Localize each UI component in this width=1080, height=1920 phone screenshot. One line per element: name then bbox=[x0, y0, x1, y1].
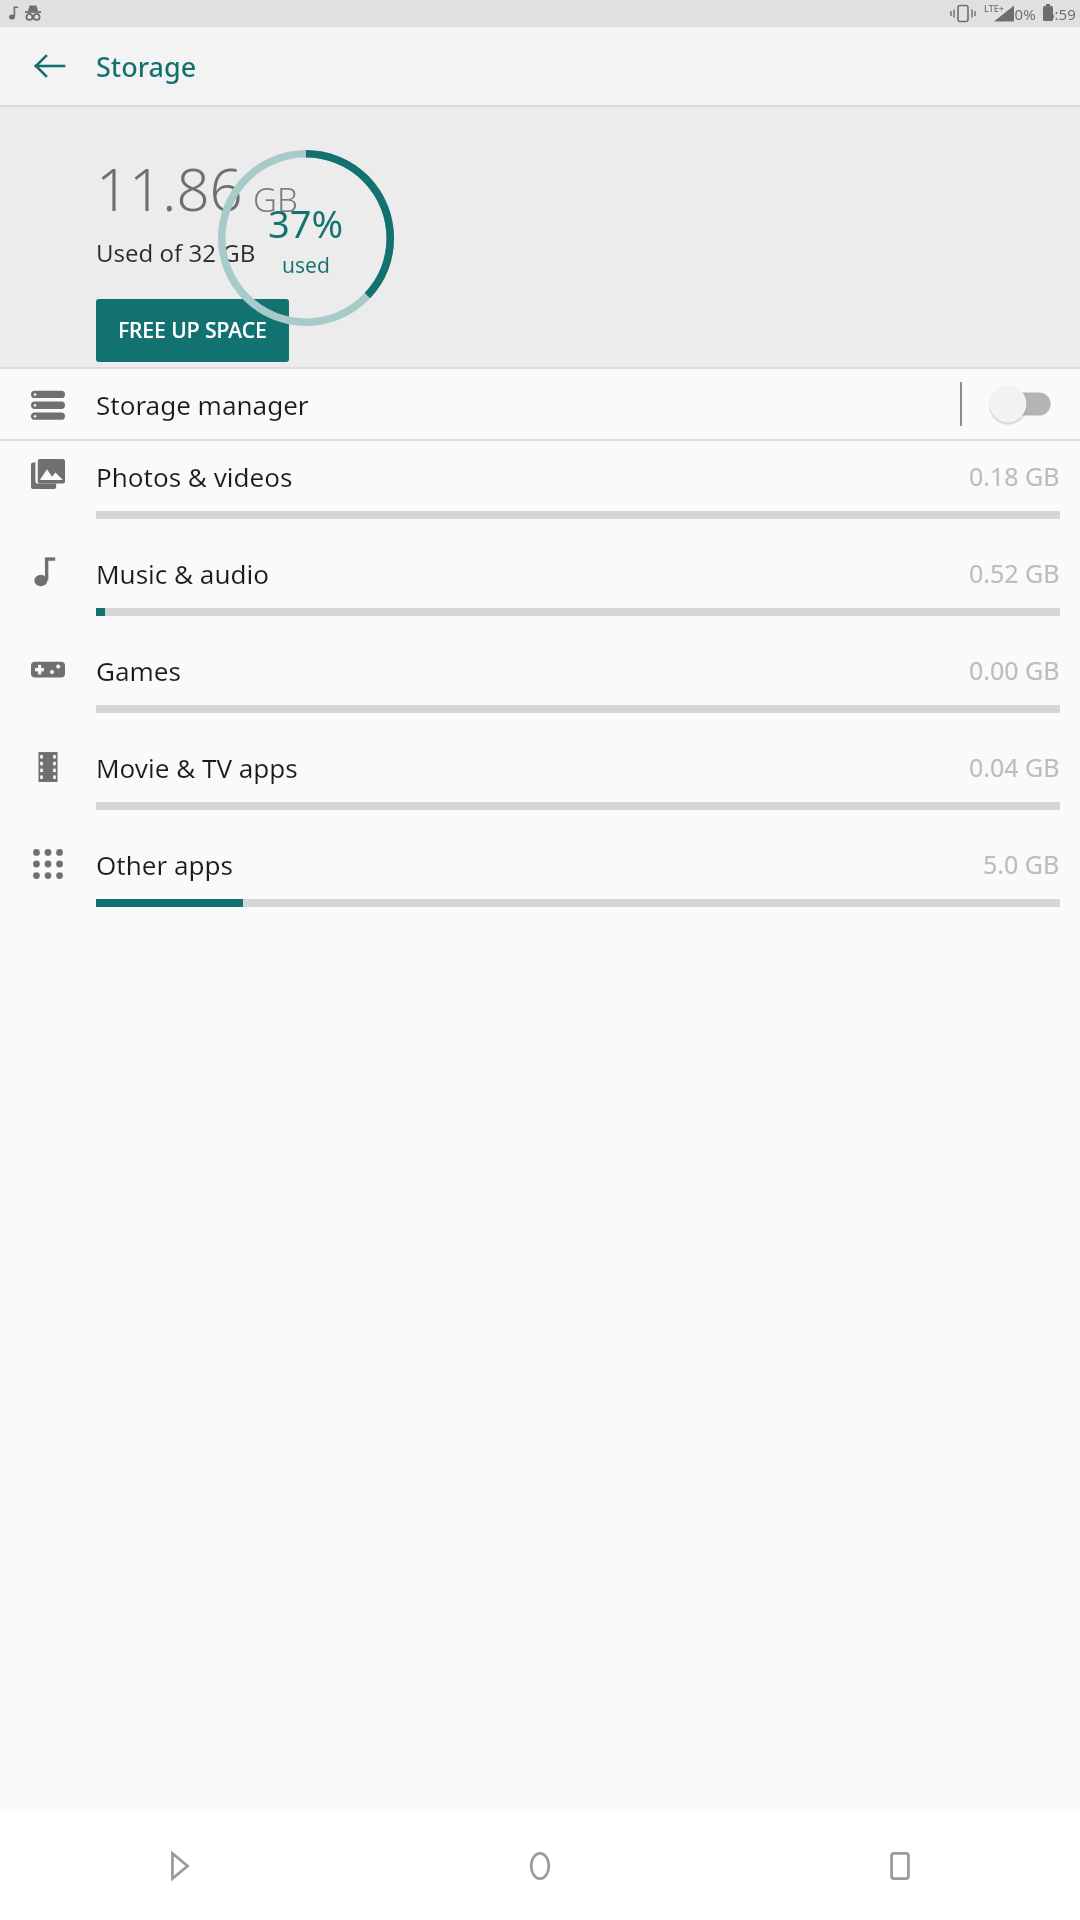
staticText: GB bbox=[253, 177, 298, 222]
staticText: Storage bbox=[96, 48, 197, 85]
staticText: Music & audio bbox=[96, 556, 969, 591]
staticText: Other apps bbox=[96, 847, 983, 882]
button[interactable]: Games bbox=[0, 635, 1080, 732]
button[interactable]: Storage manager toggle bbox=[962, 369, 1080, 439]
button[interactable]: Recent apps bbox=[720, 1812, 1080, 1920]
staticText: LTE+ bbox=[984, 2, 1004, 14]
staticText: 37% bbox=[268, 197, 344, 249]
staticText: Games bbox=[96, 653, 969, 688]
staticText: Storage manager bbox=[96, 387, 960, 422]
staticText: 11.86 bbox=[96, 149, 243, 228]
button[interactable]: Back bbox=[22, 38, 78, 94]
staticText: Movie & TV apps bbox=[96, 750, 969, 785]
button[interactable]: Back bbox=[0, 1812, 360, 1920]
staticText: Used of 32 GB bbox=[96, 236, 256, 269]
staticText: 0.00 GB bbox=[969, 653, 1060, 687]
button[interactable]: FREE UP SPACE bbox=[96, 299, 289, 362]
staticText: Photos & videos bbox=[96, 459, 969, 494]
button[interactable]: Other apps bbox=[0, 829, 1080, 926]
button[interactable]: Music & audio bbox=[0, 538, 1080, 635]
staticText: FREE UP SPACE bbox=[118, 316, 267, 345]
button[interactable]: Photos & videos bbox=[0, 441, 1080, 538]
staticText: 6:59 bbox=[1046, 4, 1076, 24]
staticText: 0.52 GB bbox=[969, 556, 1060, 590]
staticText: 0.18 GB bbox=[969, 459, 1060, 493]
staticText: used bbox=[282, 251, 330, 280]
button[interactable]: Movie & TV apps bbox=[0, 732, 1080, 829]
staticText: 90% bbox=[1006, 4, 1036, 24]
staticText: 0.04 GB bbox=[969, 750, 1060, 784]
button[interactable]: Home bbox=[360, 1812, 720, 1920]
button[interactable]: Storage manager bbox=[0, 369, 1080, 439]
staticText: 5.0 GB bbox=[983, 847, 1060, 881]
